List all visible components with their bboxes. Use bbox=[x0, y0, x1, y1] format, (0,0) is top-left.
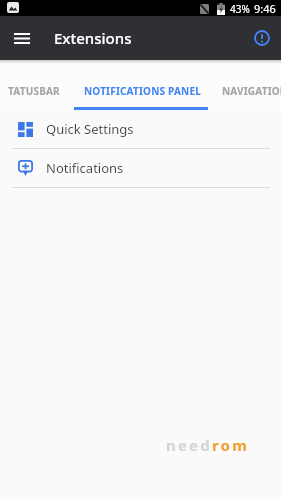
staticText: NAVIGATION BAR bbox=[222, 84, 281, 98]
staticText: TATUSBAR bbox=[8, 84, 60, 98]
staticText: 43% bbox=[230, 2, 250, 16]
staticText: Quick Settings bbox=[46, 120, 134, 138]
staticText: need bbox=[166, 435, 212, 455]
button[interactable]: TATUSBAR bbox=[0, 60, 70, 110]
button[interactable]: NOTIFICATIONS PANEL bbox=[74, 60, 208, 110]
staticText: NOTIFICATIONS PANEL bbox=[84, 84, 201, 98]
staticText: Notifications bbox=[46, 159, 124, 177]
staticText: 9:46 bbox=[254, 1, 276, 16]
button[interactable] bbox=[250, 26, 274, 50]
staticText: rom bbox=[212, 435, 250, 455]
staticText: Extensions bbox=[54, 28, 132, 48]
button[interactable] bbox=[6, 22, 38, 54]
button[interactable]: NAVIGATION BAR bbox=[222, 60, 281, 110]
button[interactable]: Quick Settings bbox=[0, 110, 281, 148]
button[interactable]: Notifications bbox=[0, 149, 281, 187]
